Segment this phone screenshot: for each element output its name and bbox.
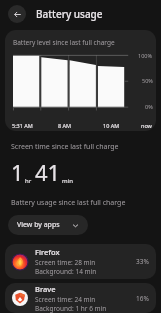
button[interactable]: Battery level since last full charge [5, 30, 156, 131]
staticText: 16% [136, 294, 149, 303]
staticText: 10 AM [103, 122, 141, 129]
staticText: Background: 1 hr 6 min [35, 304, 107, 313]
staticText: now [141, 122, 152, 129]
staticText: 8 AM [58, 122, 103, 129]
staticText: Background: 14 min [35, 267, 97, 276]
staticText: 41 [35, 157, 61, 187]
staticText: min [62, 177, 73, 185]
staticText: Screen time: 28 min [35, 258, 96, 267]
button[interactable]: Back [8, 5, 26, 23]
staticText: 1 [11, 157, 24, 187]
staticText: Screen time since last full charge [11, 142, 119, 152]
staticText: Firefox [35, 247, 60, 257]
staticText: View by apps [17, 220, 72, 230]
staticText: 100% [138, 52, 153, 59]
staticText: 0% [145, 103, 153, 110]
staticText: Brave [35, 284, 56, 294]
button[interactable]: View by apps [8, 215, 88, 235]
staticText: Battery level since last full charge [13, 38, 115, 47]
staticText: 5:31 AM [12, 122, 58, 129]
staticText: Battery usage since last full charge [11, 198, 126, 208]
button[interactable]: Firefox [5, 244, 156, 279]
staticText: Battery usage [36, 7, 103, 21]
staticText: Screen time: 24 min [35, 295, 96, 304]
button[interactable]: Brave [5, 283, 156, 313]
staticText: 33% [136, 257, 149, 266]
staticText: 50% [142, 77, 153, 84]
staticText: hr [25, 177, 32, 185]
